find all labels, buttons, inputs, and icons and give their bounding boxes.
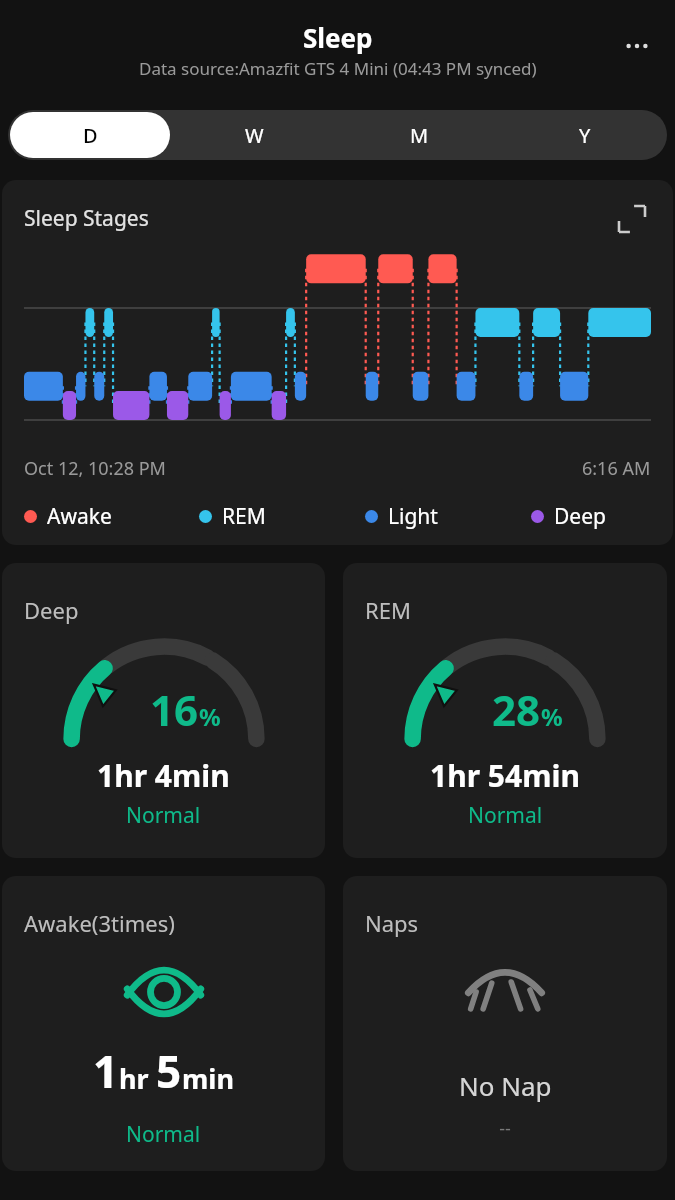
staticText: Normal bbox=[126, 1120, 201, 1149]
staticText: Y bbox=[579, 122, 591, 149]
staticText: 5 bbox=[156, 1041, 182, 1101]
staticText: -- bbox=[499, 1116, 511, 1141]
staticText: Sleep Stages bbox=[24, 204, 149, 233]
staticText: hr bbox=[119, 1060, 156, 1097]
staticText: M bbox=[410, 122, 429, 149]
staticText: Light bbox=[388, 502, 438, 531]
staticText: D bbox=[83, 122, 98, 149]
staticText: REM bbox=[222, 502, 266, 531]
staticText: Awake(3times) bbox=[24, 908, 175, 938]
staticText: % bbox=[199, 700, 221, 733]
staticText: Naps bbox=[365, 908, 419, 938]
staticText: Oct 12, 10:28 PM bbox=[24, 456, 166, 481]
button[interactable]: More options bbox=[617, 26, 657, 66]
staticText: Sleep bbox=[303, 20, 373, 55]
button[interactable]: Y bbox=[504, 112, 665, 158]
button[interactable]: Deep bbox=[2, 563, 325, 858]
button[interactable]: Expand chart bbox=[613, 200, 651, 238]
button[interactable]: Sleep Stages bbox=[2, 180, 673, 545]
staticText: 16 bbox=[150, 681, 199, 738]
staticText: Normal bbox=[468, 801, 543, 830]
staticText: W bbox=[245, 122, 264, 149]
staticText: 28 bbox=[492, 681, 541, 738]
staticText: % bbox=[541, 700, 563, 733]
staticText: 1 bbox=[93, 1041, 119, 1101]
button[interactable]: D bbox=[10, 112, 170, 158]
staticText: Data source:Amazfit GTS 4 Mini (04:43 PM… bbox=[139, 57, 537, 80]
staticText: 1hr 54min bbox=[430, 755, 580, 796]
staticText: Awake bbox=[47, 502, 112, 531]
button[interactable]: Naps bbox=[343, 876, 667, 1171]
staticText: Deep bbox=[554, 502, 606, 531]
button[interactable]: REM bbox=[343, 563, 667, 858]
staticText: Deep bbox=[24, 595, 79, 625]
button[interactable]: W bbox=[174, 112, 335, 158]
button[interactable]: Awake(3times) bbox=[2, 876, 325, 1171]
staticText: min bbox=[182, 1060, 234, 1097]
staticText: 1hr 4min bbox=[97, 755, 230, 796]
button[interactable]: M bbox=[339, 112, 500, 158]
staticText: No Nap bbox=[459, 1068, 552, 1103]
staticText: 6:16 AM bbox=[582, 456, 651, 481]
staticText: Normal bbox=[126, 801, 201, 830]
staticText: REM bbox=[365, 595, 411, 625]
